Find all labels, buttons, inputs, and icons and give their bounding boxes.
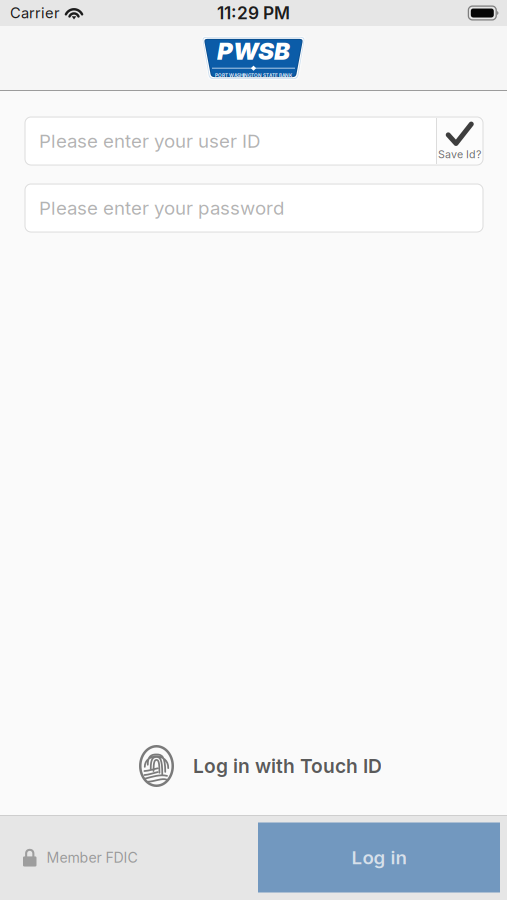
button[interactable]: Log in — [258, 822, 500, 892]
button[interactable]: Save Id? — [436, 118, 483, 164]
staticText: 11:29 PM — [217, 2, 290, 23]
button[interactable]: Log in with Touch ID — [121, 739, 386, 793]
staticText: Please enter your password — [39, 197, 284, 219]
staticText: Carrier — [10, 4, 60, 22]
staticText: Member FDIC — [46, 849, 137, 866]
staticText: Log in with Touch ID — [193, 754, 382, 778]
staticText: PORT WASHINGTON STATE BANK — [215, 73, 292, 78]
staticText: PWSB — [217, 37, 290, 66]
staticText: Log in — [351, 846, 406, 869]
staticText: Please enter your user ID — [39, 130, 260, 152]
staticText: Save Id? — [438, 148, 481, 161]
